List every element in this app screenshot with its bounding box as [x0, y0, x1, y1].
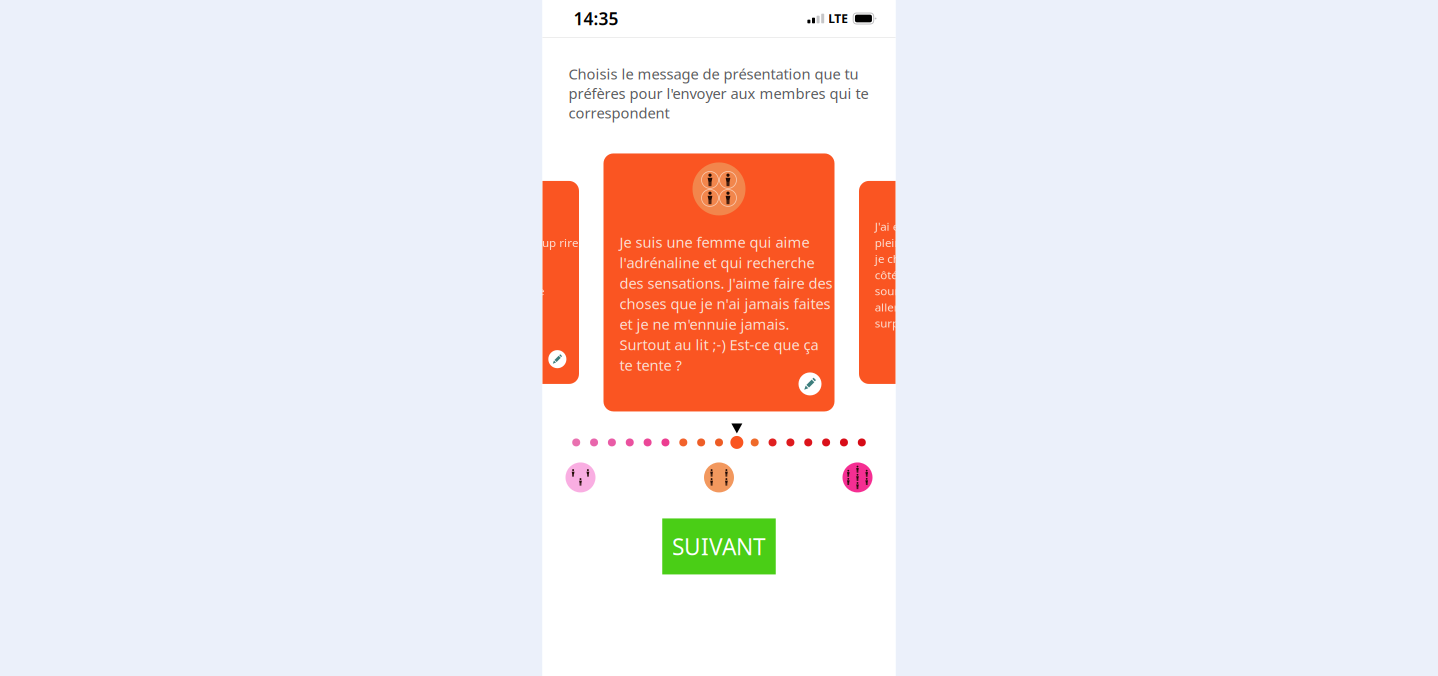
button[interactable]: Message 9 [710, 435, 728, 449]
staticText: Je suis une femme qui aime l'adrénaline … [619, 232, 832, 375]
button[interactable]: Message 1 [567, 435, 585, 449]
button[interactable]: Je suis une femme qui aime l'adrénaline … [603, 153, 834, 411]
button[interactable]: J'ai envie de profiter pleinement de la … [859, 181, 1041, 384]
staticText: J'ai envie de profiter pleinement de la … [854, 201, 1042, 344]
staticText: Salut, je suis une fille simple qui aime… [393, 201, 603, 344]
button[interactable]: Message 4 [621, 435, 639, 449]
staticText: 14:35 [573, 7, 618, 30]
button[interactable]: Message 6 [656, 435, 674, 449]
button[interactable]: Message 17 [853, 435, 871, 449]
button[interactable]: Message 3 [603, 435, 621, 449]
button[interactable]: SUIVANT [662, 518, 776, 574]
button[interactable]: Message 11 [746, 435, 764, 449]
button[interactable]: Salut, je suis une fille simple qui aime… [397, 181, 579, 384]
button[interactable]: Message 10 [728, 435, 746, 449]
staticText: SUIVANT [672, 531, 766, 561]
button[interactable]: Modifier le message [565, 368, 588, 391]
button[interactable]: Modifier le message [798, 372, 821, 395]
button[interactable]: Grand groupe [842, 462, 872, 492]
button[interactable]: Message 15 [817, 435, 835, 449]
button[interactable]: Message 14 [799, 435, 817, 449]
button[interactable]: Message 8 [692, 435, 710, 449]
button[interactable]: Message 5 [639, 435, 657, 449]
button[interactable]: Message 2 [585, 435, 603, 449]
button[interactable]: Message 13 [781, 435, 799, 449]
button[interactable]: Message 12 [764, 435, 781, 449]
button[interactable]: Message 7 [674, 435, 692, 449]
button[interactable]: Petit groupe [565, 462, 595, 492]
staticText: Choisis le message de présentation que t… [568, 64, 868, 122]
button[interactable]: Groupe moyen [704, 462, 734, 492]
staticText: LTE [828, 10, 848, 26]
button[interactable]: Message 16 [835, 435, 853, 449]
